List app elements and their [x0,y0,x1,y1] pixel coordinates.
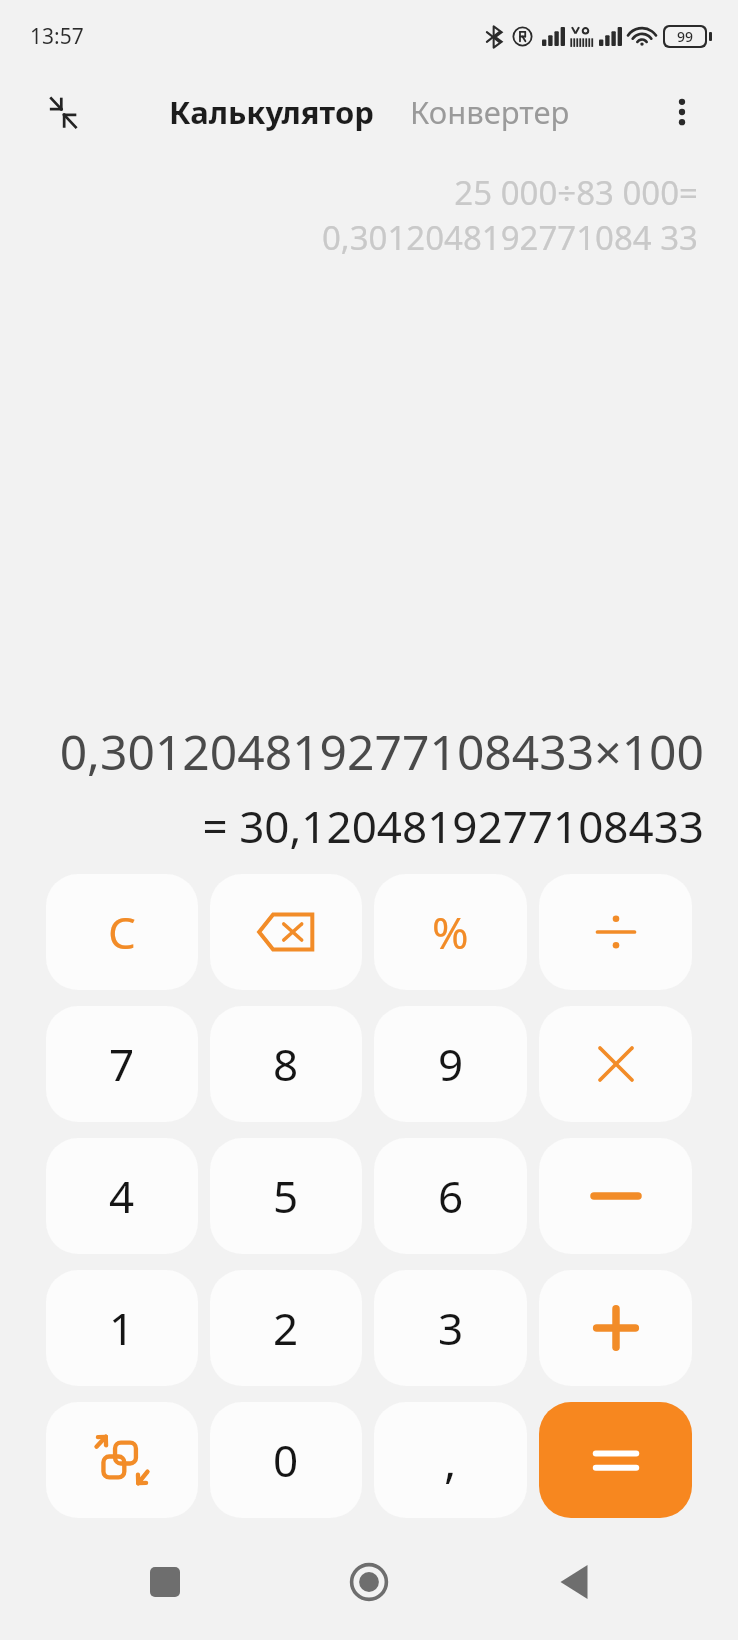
button[interactable]: More options [656,86,708,138]
staticText: , [444,1429,457,1492]
button[interactable]: Unit converter [46,1402,198,1518]
button[interactable]: Home [329,1542,409,1622]
button[interactable]: Recent apps [125,1542,205,1622]
staticText: 0,3012048192771084 33 [321,215,698,260]
button[interactable]: 1 [46,1270,198,1386]
button[interactable]: Калькулятор [163,83,380,141]
staticText: 8 [273,1034,299,1094]
staticText: 4 [109,1166,135,1226]
button[interactable]: 8 [210,1006,362,1122]
button[interactable]: 9 [374,1006,527,1122]
staticText: 99 [677,27,694,46]
button[interactable]: C [46,874,198,990]
button[interactable] [539,874,692,990]
button[interactable]: 25 000÷83 000= [40,170,698,260]
staticText: % [432,902,469,962]
button[interactable]: Backspace [210,874,362,990]
staticText: 7 [109,1034,135,1094]
button[interactable]: , [374,1402,527,1518]
button[interactable]: Back [534,1542,614,1622]
staticText: Конвертер [410,91,570,133]
staticText: 2 [273,1298,299,1358]
staticText: C [108,902,136,962]
button[interactable] [539,1138,692,1254]
button[interactable]: 2 [210,1270,362,1386]
staticText: Калькулятор [169,91,374,133]
staticText: 9 [438,1034,464,1094]
staticText: 3 [438,1298,464,1358]
staticText: 6 [438,1166,464,1226]
button[interactable]: 3 [374,1270,527,1386]
staticText: 1 [109,1298,135,1358]
staticText: 5 [273,1166,299,1226]
staticText: 0,301204819277108433×100 [59,719,704,784]
button[interactable] [539,1006,692,1122]
button[interactable]: 6 [374,1138,527,1254]
button[interactable] [539,1402,692,1518]
button[interactable]: Collapse [36,86,88,138]
button[interactable]: 5 [210,1138,362,1254]
button[interactable]: 0 [210,1402,362,1518]
button[interactable]: 4 [46,1138,198,1254]
button[interactable]: % [374,874,527,990]
button[interactable]: 7 [46,1006,198,1122]
staticText: 0 [273,1430,299,1490]
button[interactable] [539,1270,692,1386]
staticText: 13:57 [30,22,84,51]
button[interactable]: Конвертер [404,83,576,141]
staticText: = 30,1204819277108433 [202,796,704,856]
staticText: 25 000÷83 000= [454,170,698,215]
